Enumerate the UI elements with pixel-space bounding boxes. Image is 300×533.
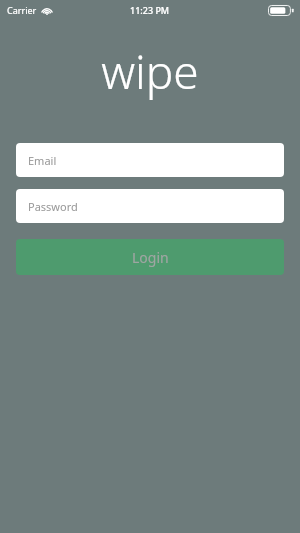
staticText: Login	[132, 248, 169, 267]
staticText: wipe	[101, 40, 199, 103]
staticText: Email	[28, 153, 57, 168]
button[interactable]: Login	[16, 239, 284, 275]
staticText: 11:23 PM	[130, 4, 170, 16]
staticText: Password	[28, 199, 78, 214]
other: Wi-Fi signal	[41, 6, 53, 15]
staticText: Carrier	[7, 4, 37, 16]
button[interactable]: Email	[16, 143, 284, 177]
other: Battery	[268, 5, 294, 16]
button[interactable]: Password	[16, 189, 284, 223]
